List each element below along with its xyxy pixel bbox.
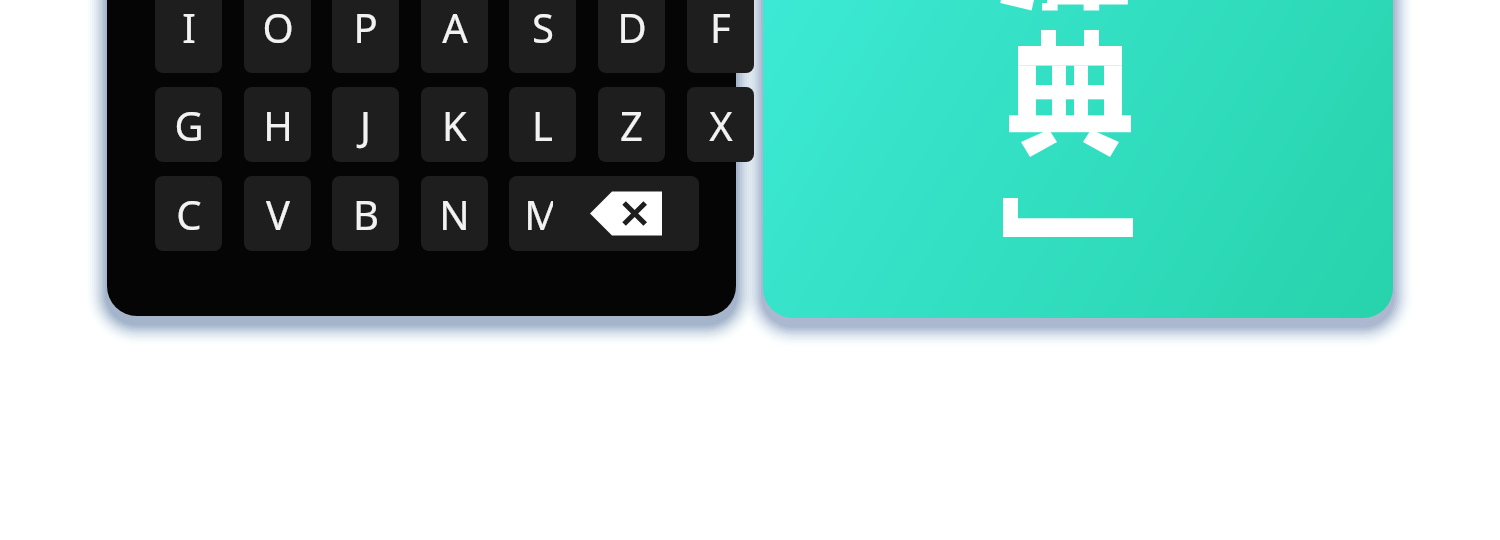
button[interactable]: Z bbox=[598, 87, 665, 162]
staticText: K bbox=[442, 98, 467, 152]
staticText: L bbox=[532, 98, 553, 152]
button[interactable]: D bbox=[598, 0, 665, 73]
button[interactable]: B bbox=[332, 176, 399, 251]
staticText: D bbox=[617, 0, 647, 54]
staticText: H bbox=[263, 98, 293, 152]
staticText: Z bbox=[620, 98, 643, 152]
button[interactable]: L bbox=[509, 87, 576, 162]
staticText: P bbox=[353, 0, 378, 54]
button[interactable]: A bbox=[421, 0, 488, 73]
staticText: V bbox=[266, 187, 290, 241]
button[interactable]: O bbox=[244, 0, 311, 73]
staticText: C bbox=[176, 187, 202, 241]
button[interactable]: H bbox=[244, 87, 311, 162]
staticText: F bbox=[710, 0, 731, 54]
staticText: A bbox=[442, 0, 468, 54]
button[interactable]: C bbox=[155, 176, 222, 251]
button[interactable]: K bbox=[421, 87, 488, 162]
button[interactable]: F bbox=[687, 0, 754, 73]
button[interactable]: P bbox=[332, 0, 399, 73]
button[interactable]: N bbox=[421, 176, 488, 251]
staticText: J bbox=[360, 98, 371, 152]
staticText: I bbox=[182, 0, 196, 54]
button[interactable]: M bbox=[509, 176, 576, 251]
button[interactable]: X bbox=[687, 87, 754, 162]
staticText: B bbox=[353, 187, 379, 241]
button[interactable]: J bbox=[332, 87, 399, 162]
button[interactable]: Dictionary bbox=[763, 0, 1393, 318]
button[interactable]: V bbox=[244, 176, 311, 251]
button[interactable]: I bbox=[155, 0, 222, 73]
staticText: G bbox=[174, 98, 204, 152]
staticText: N bbox=[439, 187, 470, 241]
staticText: S bbox=[532, 0, 554, 54]
button[interactable]: Backspace bbox=[553, 176, 699, 251]
staticText: M bbox=[524, 187, 561, 241]
button[interactable]: S bbox=[509, 0, 576, 73]
button[interactable]: G bbox=[155, 87, 222, 162]
staticText: X bbox=[709, 98, 733, 152]
staticText: O bbox=[262, 0, 294, 54]
